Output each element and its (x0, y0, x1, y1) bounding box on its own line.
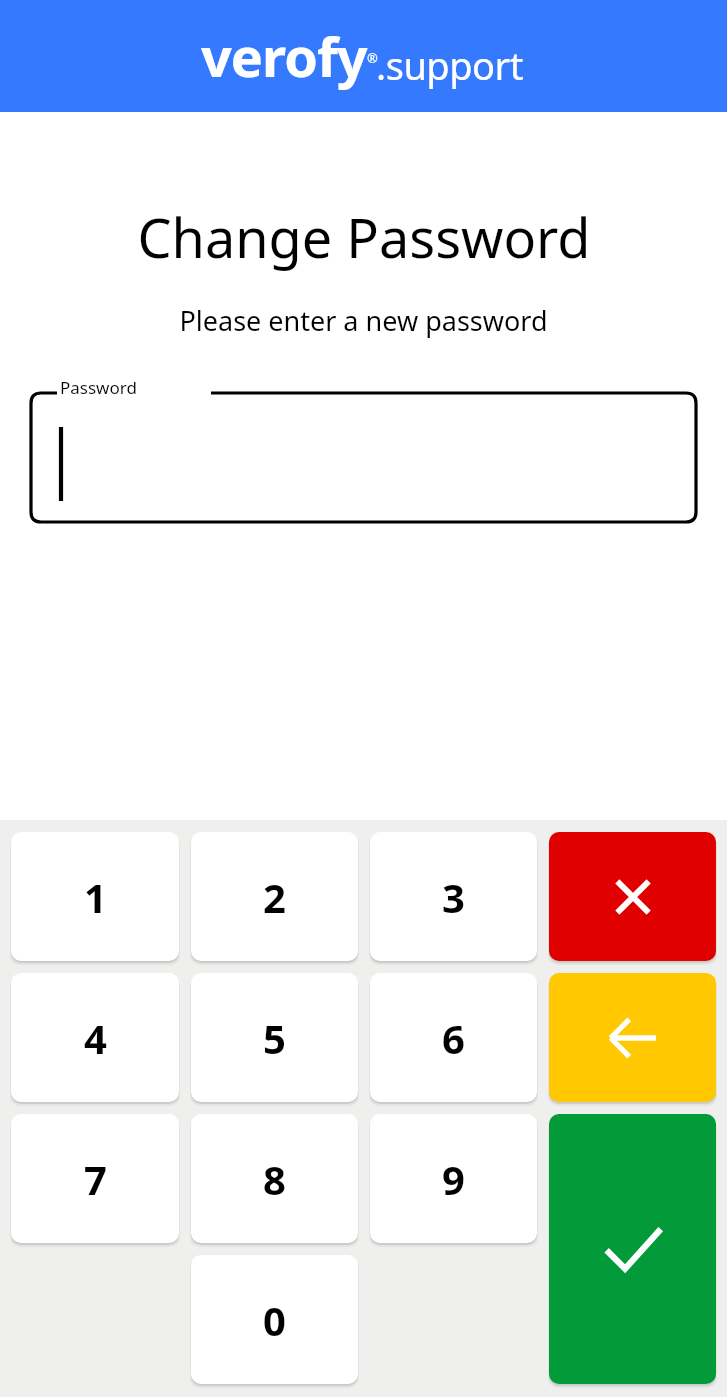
staticText: Please enter a new password (179, 302, 548, 339)
button[interactable]: Confirm (549, 1114, 716, 1384)
staticText: 4 (84, 1011, 107, 1065)
staticText: 9 (442, 1152, 465, 1206)
button[interactable]: 8 (191, 1114, 358, 1243)
button[interactable]: Password (29, 379, 698, 524)
staticText: 2 (263, 870, 286, 924)
button[interactable]: Backspace (549, 973, 716, 1102)
button[interactable]: 1 (11, 832, 179, 961)
staticText: verofy (201, 19, 367, 93)
button[interactable]: Clear (549, 832, 716, 961)
button[interactable]: 0 (191, 1255, 358, 1384)
staticText: Change Password (137, 200, 591, 274)
staticText: 1 (84, 870, 107, 924)
staticText: ® (367, 49, 378, 67)
button[interactable]: 3 (370, 832, 537, 961)
button[interactable]: 7 (11, 1114, 179, 1243)
staticText: 0 (263, 1293, 286, 1347)
staticText: .support (376, 39, 524, 91)
staticText: 7 (84, 1152, 107, 1206)
button[interactable]: 2 (191, 832, 358, 961)
staticText: 5 (263, 1011, 286, 1065)
staticText: 8 (263, 1152, 286, 1206)
button[interactable]: 9 (370, 1114, 537, 1243)
button[interactable]: 6 (370, 973, 537, 1102)
staticText: 6 (442, 1011, 465, 1065)
button[interactable]: 5 (191, 973, 358, 1102)
staticText: Password (60, 376, 137, 399)
button[interactable]: 4 (11, 973, 179, 1102)
staticText: 3 (442, 870, 465, 924)
